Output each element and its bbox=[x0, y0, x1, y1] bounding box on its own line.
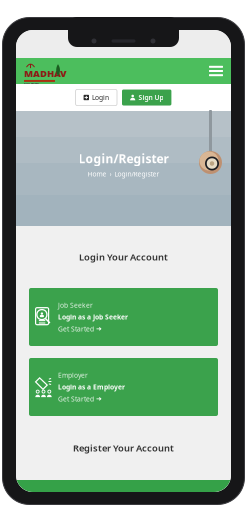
staticText: › bbox=[109, 169, 111, 178]
staticText: Job Seeker bbox=[58, 301, 93, 310]
staticText: MADHAV bbox=[24, 67, 66, 79]
button[interactable]: Sign Up bbox=[122, 89, 171, 105]
button[interactable]: Job Seeker bbox=[29, 288, 218, 346]
button[interactable]: Login bbox=[76, 89, 117, 105]
staticText: Login/Register bbox=[114, 169, 159, 178]
staticText: Get Started bbox=[58, 324, 94, 333]
button[interactable]: Employer bbox=[29, 358, 218, 416]
staticText: Login Your Account bbox=[79, 251, 168, 263]
staticText: Employer bbox=[58, 371, 88, 380]
staticText: Home bbox=[87, 169, 106, 178]
staticText: PLACEMENT bbox=[24, 82, 40, 86]
staticText: Login bbox=[92, 93, 109, 102]
staticText: Login as a Job Seeker bbox=[58, 313, 128, 321]
button[interactable]: Menu bbox=[201, 60, 231, 82]
staticText: Get Started bbox=[58, 394, 94, 403]
staticText: Sign Up bbox=[138, 93, 163, 102]
staticText: Register Your Account bbox=[73, 442, 174, 454]
staticText: Login as a Employer bbox=[58, 383, 125, 391]
staticText: Login/Register bbox=[78, 151, 168, 166]
